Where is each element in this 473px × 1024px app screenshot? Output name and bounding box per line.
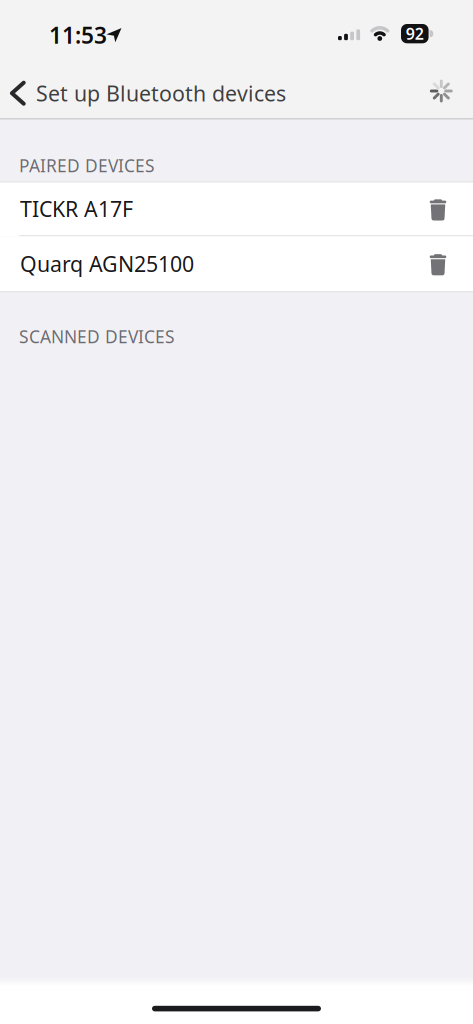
button[interactable]: Back bbox=[0, 65, 286, 121]
button[interactable]: Quarq AGN25100 bbox=[0, 236, 473, 291]
staticText: TICKR A17F bbox=[20, 195, 133, 223]
button[interactable]: TICKR A17F bbox=[0, 183, 473, 235]
staticText: Quarq AGN25100 bbox=[20, 249, 194, 278]
staticText: PAIRED DEVICES bbox=[19, 154, 155, 177]
staticText: 92 bbox=[406, 23, 424, 44]
staticText: SCANNED DEVICES bbox=[19, 325, 175, 348]
button[interactable]: Scanning for devices bbox=[429, 79, 453, 103]
staticText: 11:53 bbox=[49, 20, 107, 50]
button[interactable]: Delete bbox=[416, 183, 460, 235]
button[interactable]: Delete bbox=[416, 236, 460, 291]
staticText: Set up Bluetooth devices bbox=[36, 79, 286, 107]
